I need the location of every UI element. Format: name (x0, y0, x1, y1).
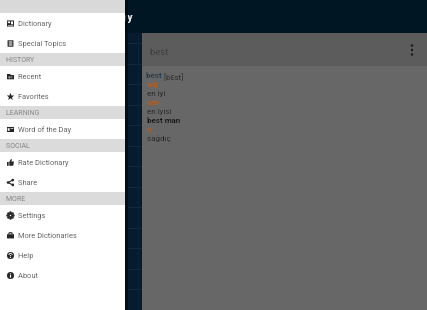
staticText: n (147, 125, 152, 134)
button[interactable]: Special Topics (0, 33, 125, 53)
button[interactable]: Recent (0, 66, 125, 86)
staticText: Settings (18, 211, 46, 220)
staticText: Dictionary (87, 12, 133, 24)
staticText: Special Topics (18, 39, 67, 48)
staticText: Recent (18, 72, 42, 81)
staticText: SOCIAL (6, 142, 30, 150)
button[interactable]: Share (0, 172, 125, 192)
button[interactable]: More options (401, 39, 423, 61)
staticText: best (150, 46, 169, 57)
staticText: best (146, 71, 162, 80)
staticText: MORE (6, 195, 26, 203)
staticText: best man (147, 116, 181, 125)
staticText: Favorites (18, 92, 49, 101)
button[interactable]: Word of the Day (0, 119, 125, 139)
staticText: sağdıç (147, 134, 171, 143)
button[interactable]: Favorites (0, 86, 125, 106)
staticText: Rate Dictionary (18, 158, 69, 167)
staticText: LEARNING (6, 109, 40, 117)
staticText: [bɛst] (162, 71, 184, 82)
button[interactable]: More Dictionaries (0, 225, 125, 245)
button[interactable]: About (0, 265, 125, 285)
staticText: en iyisi (147, 107, 172, 116)
staticText: More Dictionaries (18, 231, 77, 240)
staticText: About (18, 271, 38, 280)
button[interactable]: Rate Dictionary (0, 152, 125, 172)
staticText: HISTORY (6, 56, 35, 64)
staticText: adj (147, 80, 158, 89)
staticText: Share (18, 178, 38, 187)
button[interactable]: Help (0, 245, 125, 265)
button[interactable]: Dictionary (0, 13, 125, 33)
staticText: adv (147, 98, 160, 107)
staticText: en iyi (147, 89, 166, 98)
button[interactable]: Settings (0, 205, 125, 225)
staticText: Help (18, 251, 34, 260)
staticText: Word of the Day (18, 125, 72, 134)
staticText: Dictionary (18, 19, 52, 28)
